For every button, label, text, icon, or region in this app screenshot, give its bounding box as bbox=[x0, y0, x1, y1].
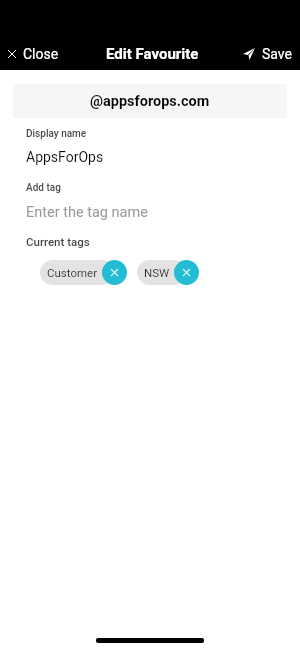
staticText: Close bbox=[23, 46, 59, 62]
other: Save bbox=[243, 48, 255, 60]
staticText: Enter the tag name bbox=[26, 204, 148, 221]
button[interactable]: NSW bbox=[137, 260, 199, 285]
staticText: Current tags bbox=[26, 235, 90, 248]
button[interactable]: Save bbox=[235, 40, 300, 68]
other: Remove NSW bbox=[174, 260, 199, 285]
button[interactable]: Customer bbox=[40, 260, 127, 285]
button[interactable]: @appsforops.com bbox=[13, 84, 287, 118]
button[interactable]: Add tag bbox=[0, 182, 300, 221]
staticText: @appsforops.com bbox=[90, 93, 210, 110]
other: Remove Customer bbox=[102, 260, 127, 285]
staticText: AppsForOps bbox=[26, 149, 104, 165]
staticText: Customer bbox=[47, 266, 98, 279]
staticText: Edit Favourite bbox=[106, 45, 199, 63]
staticText: Display name bbox=[26, 128, 87, 140]
other: Close bbox=[8, 50, 16, 58]
button[interactable]: Close bbox=[0, 40, 67, 68]
button[interactable]: Display name bbox=[0, 128, 300, 165]
staticText: Add tag bbox=[26, 182, 61, 194]
staticText: NSW bbox=[144, 266, 170, 279]
staticText: Save bbox=[262, 46, 292, 62]
